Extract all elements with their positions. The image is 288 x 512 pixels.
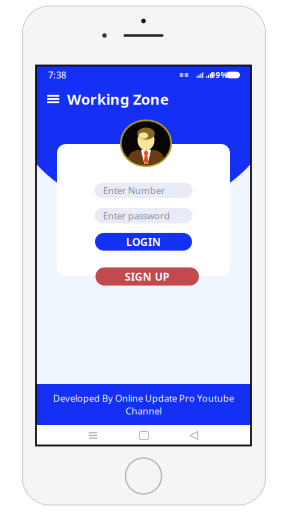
staticText: 7:38 — [48, 69, 66, 81]
button[interactable]: Recent apps — [82, 425, 104, 445]
staticText: Enter password — [103, 209, 170, 222]
staticText: LOGIN — [126, 235, 161, 249]
staticText: SIGN UP — [125, 269, 170, 284]
button[interactable]: Home — [133, 425, 155, 445]
button[interactable]: Enter Number — [95, 183, 193, 198]
staticText: 99% — [210, 70, 227, 80]
button[interactable]: Menu — [41, 88, 65, 110]
button[interactable]: Enter password — [95, 208, 193, 223]
staticText: Working Zone — [67, 89, 169, 109]
button[interactable]: Back — [183, 425, 205, 445]
staticText: Developed By Online Update Pro Youtube — [53, 392, 234, 404]
button[interactable]: LOGIN — [95, 233, 192, 251]
staticText: Enter Number — [103, 184, 165, 197]
staticText: Channel — [125, 405, 161, 417]
button[interactable]: SIGN UP — [95, 267, 199, 286]
